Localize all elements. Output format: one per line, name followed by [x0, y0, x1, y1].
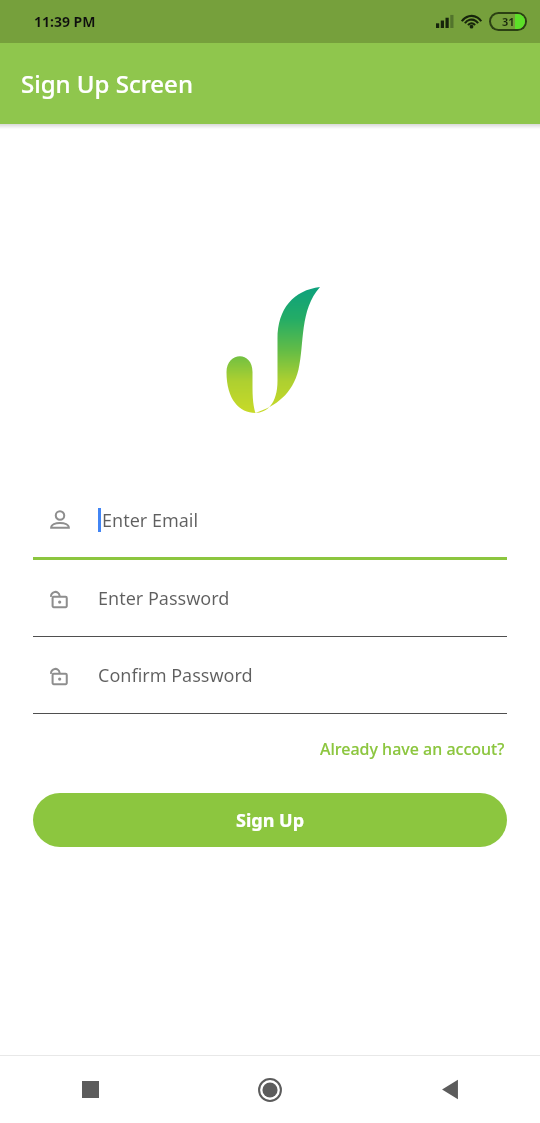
staticText: Confirm Password [98, 663, 253, 688]
button[interactable]: Home [180, 1056, 360, 1123]
button[interactable]: Confirm Password [33, 637, 507, 713]
button[interactable]: Back [360, 1056, 540, 1123]
staticText: Sign Up [236, 808, 305, 833]
button[interactable]: Sign Up [33, 793, 507, 847]
staticText: 31 [502, 14, 515, 29]
staticText: Enter Password [98, 586, 230, 611]
staticText: 11:39 PM [34, 12, 96, 31]
button[interactable]: Recent apps [0, 1056, 180, 1123]
button[interactable]: Already have an accout? [314, 732, 511, 766]
staticText: Already have an accout? [320, 738, 505, 760]
button[interactable]: Enter Password [33, 560, 507, 636]
staticText: Sign Up Screen [21, 67, 193, 100]
button[interactable]: Enter Email [33, 483, 507, 557]
staticText: Enter Email [102, 508, 199, 533]
